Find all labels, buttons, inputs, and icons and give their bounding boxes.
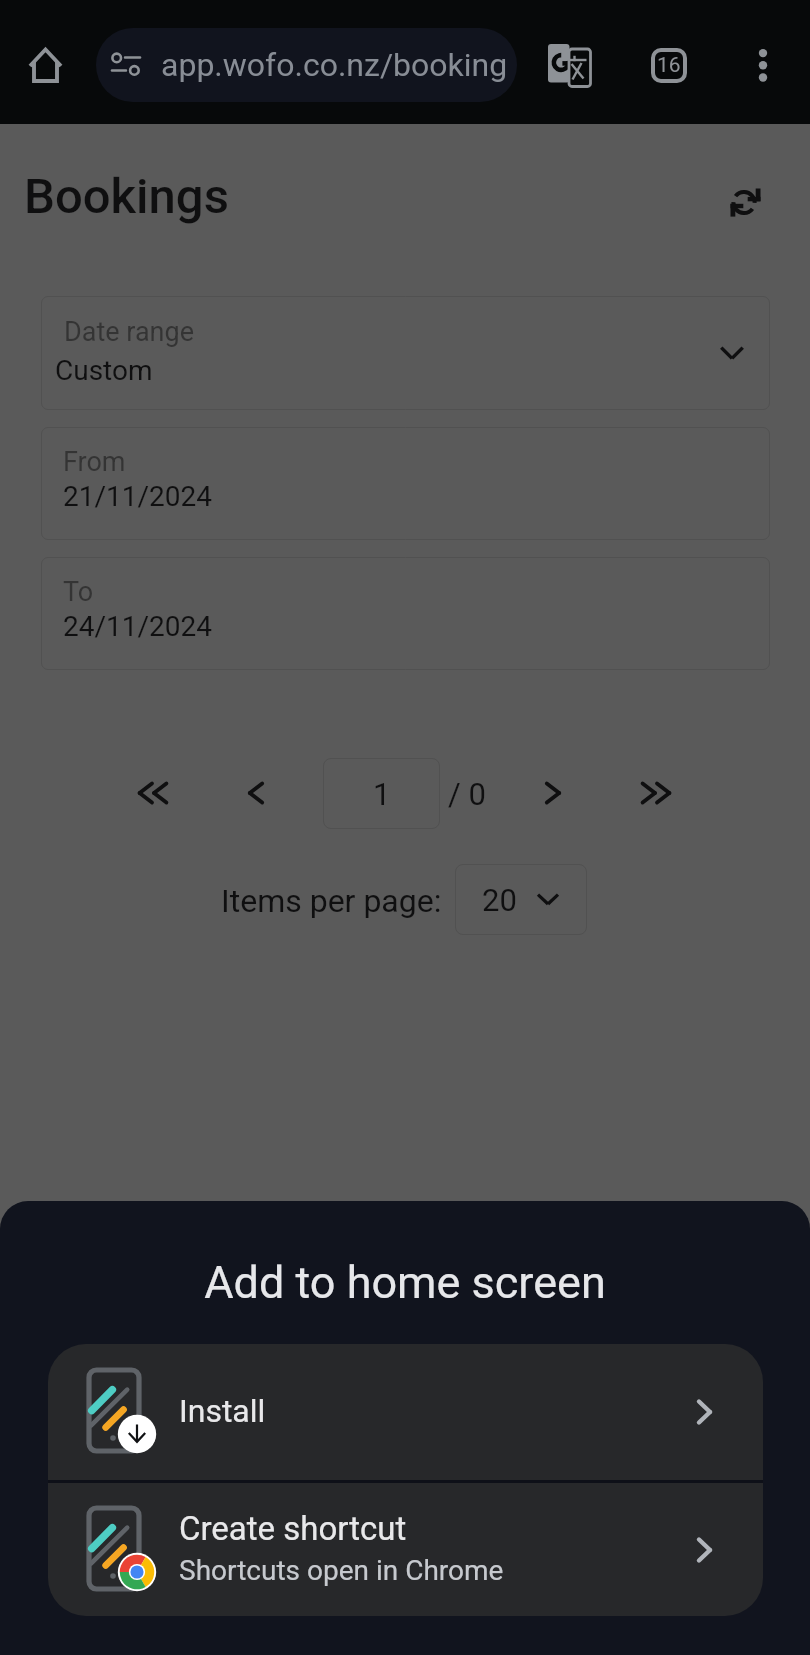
button[interactable]: Switch tabs, 16 open <box>637 34 699 96</box>
button[interactable]: Home <box>17 33 78 94</box>
staticText: 16 <box>657 53 681 78</box>
button[interactable]: More options <box>733 34 793 94</box>
button[interactable]: 1 <box>323 758 440 829</box>
button[interactable]: From <box>41 427 770 540</box>
staticText: Date range <box>64 316 194 348</box>
button[interactable]: 20 <box>455 864 587 935</box>
staticText: Items per page: <box>221 882 442 920</box>
staticText: 24/11/2024 <box>63 610 212 643</box>
staticText: / 0 <box>448 776 486 812</box>
staticText: Shortcuts open in Chrome <box>179 1554 504 1587</box>
button[interactable]: Translate page <box>533 31 595 93</box>
button[interactable]: Create shortcut <box>48 1483 763 1616</box>
staticText: Custom <box>55 354 153 387</box>
button[interactable]: Refresh <box>702 160 788 246</box>
button[interactable]: Date range <box>41 296 770 410</box>
staticText: To <box>63 576 94 608</box>
staticText: Create shortcut <box>179 1509 407 1548</box>
staticText: app.wofo.co.nz/booking <box>161 46 508 84</box>
staticText: 1 <box>373 776 391 812</box>
staticText: From <box>63 446 126 478</box>
button[interactable]: To <box>41 557 770 670</box>
button[interactable]: Install <box>48 1344 763 1480</box>
staticText: Install <box>179 1392 266 1430</box>
staticText: Add to home screen <box>0 1256 810 1309</box>
button[interactable]: app.wofo.co.nz/booking <box>96 28 517 102</box>
staticText: Bookings <box>24 168 229 225</box>
staticText: 21/11/2024 <box>63 480 212 513</box>
staticText: 20 <box>482 882 517 918</box>
